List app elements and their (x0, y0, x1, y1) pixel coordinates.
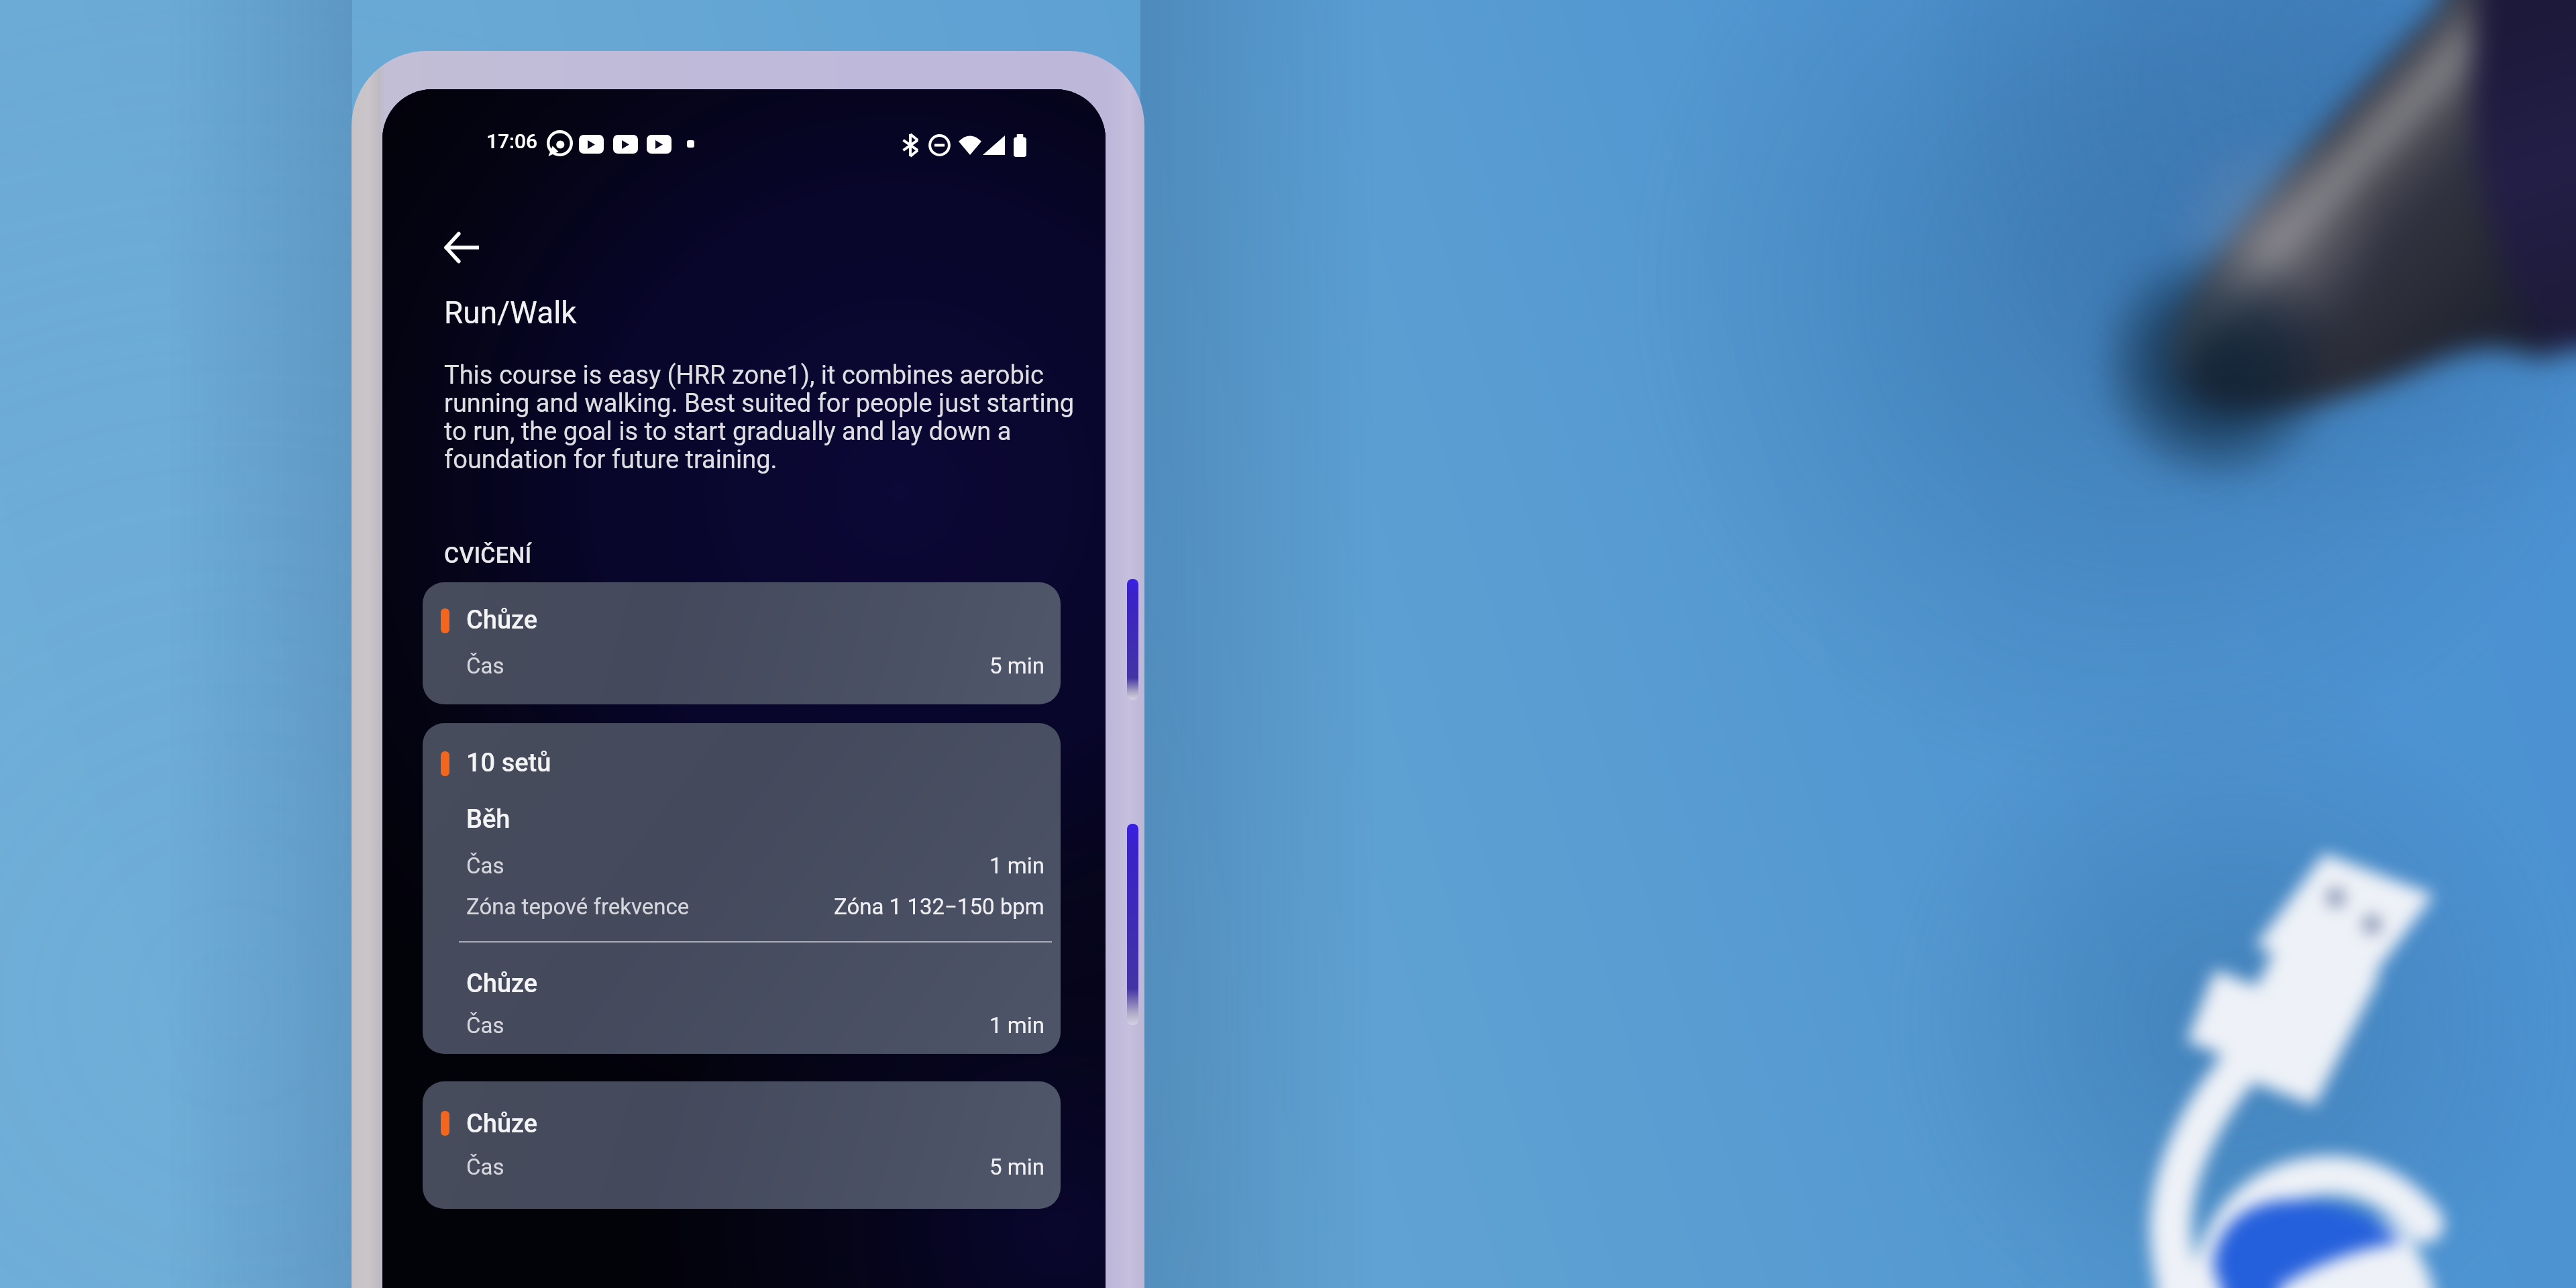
staticText: Chůze (466, 1109, 538, 1139)
staticText: 5 min (989, 1154, 1044, 1180)
staticText: Běh (466, 804, 511, 835)
staticText: 5 min (989, 653, 1044, 679)
staticText: 1 min (989, 853, 1044, 879)
staticText: Čas (466, 853, 504, 879)
staticText: 1 min (989, 1012, 1044, 1038)
staticText: 10 setů (466, 748, 551, 778)
button[interactable]: Chůze (423, 582, 1061, 704)
staticText: Zóna tepové frekvence (466, 894, 690, 920)
staticText: Čas (466, 1012, 504, 1038)
staticText: Čas (466, 653, 504, 679)
staticText: Čas (466, 1154, 504, 1180)
staticText: CVIČENÍ (444, 541, 532, 568)
staticText: 17:06 (486, 129, 538, 153)
staticText: Zóna 1 132−150 bpm (834, 894, 1044, 920)
button[interactable]: 10 setů (423, 723, 1061, 1054)
button[interactable]: Chůze (423, 1081, 1061, 1209)
staticText: Chůze (466, 969, 538, 999)
staticText: Run/Walk (444, 294, 577, 331)
staticText: This course is easy (HRR zone1), it comb… (444, 360, 1075, 475)
staticText: Chůze (466, 605, 538, 635)
button[interactable]: Back (423, 209, 500, 286)
